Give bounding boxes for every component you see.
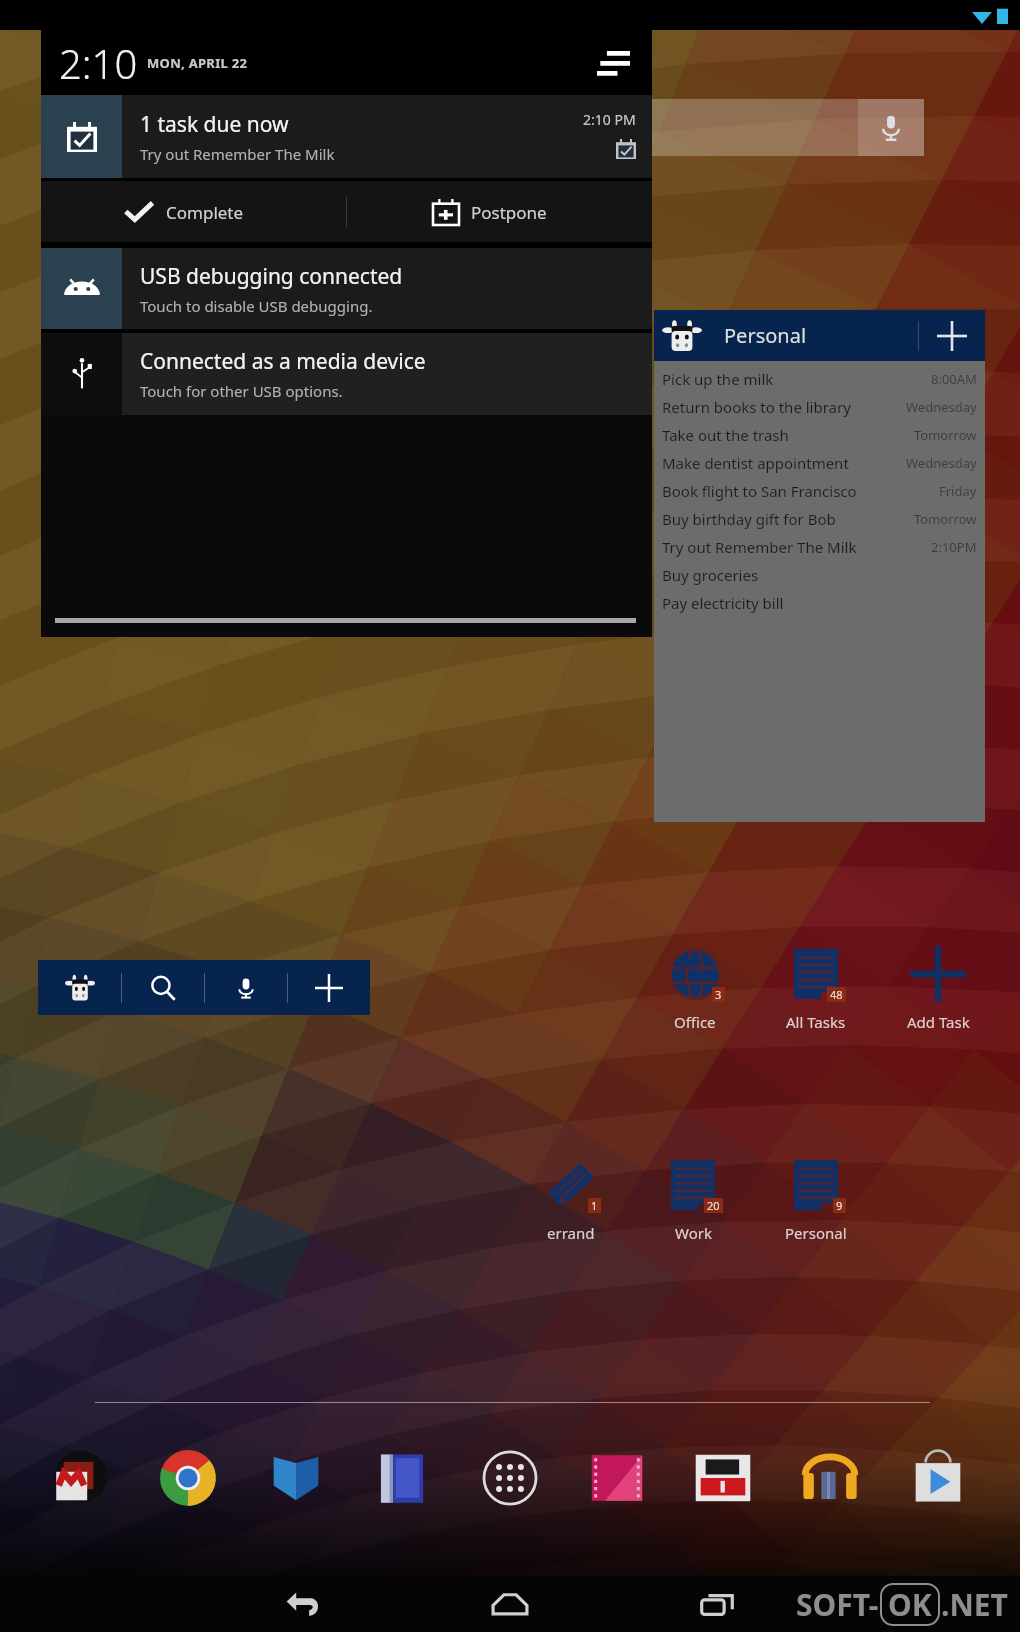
button[interactable]: Try out Remember The Milk [662,533,977,561]
staticText: 1 task due now [140,110,289,139]
button[interactable]: Book flight to San Francisco [662,477,977,505]
button[interactable]: Recents [673,1576,763,1632]
staticText: Add Task [907,1012,970,1032]
staticText: Try out Remember The Milk [140,144,335,164]
staticText: 2:10PM [931,538,977,556]
staticText: Tomorrow [914,510,977,528]
staticText: All Tasks [786,1012,846,1032]
staticText: 1 [591,1198,598,1213]
button[interactable]: Take out the trash [662,421,977,449]
staticText: Try out Remember The Milk [662,537,857,557]
staticText: Touch to disable USB debugging. [140,296,373,316]
staticText: Wednesday [906,454,977,472]
staticText: 20 [707,1198,720,1213]
staticText: 9 [836,1198,843,1213]
button[interactable]: Apps [468,1436,552,1520]
button[interactable]: Remember The Milk [38,960,121,1015]
staticText: Buy birthday gift for Bob [662,509,836,529]
button[interactable]: Home [465,1576,555,1632]
button[interactable]: 1 [511,1149,631,1249]
button[interactable]: Search [122,960,204,1015]
staticText: Make dentist appointment [662,453,849,473]
button[interactable]: Play Magazines [360,1436,444,1520]
staticText: MON, APRIL 22 [147,54,248,72]
button[interactable]: Add task [288,960,370,1015]
button[interactable]: Play Movies [575,1436,659,1520]
button[interactable]: Add task [919,310,985,361]
staticText: .NET [941,1584,1008,1625]
staticText: 3 [715,987,722,1002]
button[interactable]: 48 [756,938,876,1038]
button[interactable]: Play Store [896,1436,980,1520]
button[interactable]: Return books to the library [662,393,977,421]
staticText: Pay electricity bill [662,593,784,613]
staticText: Buy groceries [662,565,759,585]
button[interactable]: Buy groceries [662,561,977,589]
staticText: Touch for other USB options. [140,381,343,401]
staticText: Friday [939,482,977,500]
button[interactable]: Personal [654,310,985,361]
button[interactable]: 9 [756,1149,876,1249]
button[interactable]: Make dentist appointment [662,449,977,477]
staticText: Take out the trash [662,425,789,445]
button[interactable]: Back [258,1576,348,1632]
button[interactable]: Add Task [878,938,998,1038]
button[interactable]: Quick settings [590,43,636,83]
button[interactable]: 3 [635,938,755,1038]
staticText: 48 [830,987,843,1002]
staticText: Personal [724,322,807,349]
staticText: errand [547,1223,595,1243]
button[interactable]: Pay electricity bill [662,589,977,617]
button[interactable]: USB debugging connected [41,248,652,329]
staticText: Wednesday [906,398,977,416]
button[interactable]: Pick up the milk [662,365,977,393]
staticText: SOFT- [796,1584,879,1625]
button[interactable]: 1 task due now [41,95,652,178]
button[interactable]: Voice search [205,960,287,1015]
button[interactable]: 20 [633,1149,753,1249]
staticText: Work [675,1223,712,1243]
button[interactable]: Buy birthday gift for Bob [662,505,977,533]
staticText: USB debugging connected [140,262,403,291]
staticText: Personal [785,1223,847,1243]
staticText: Connected as a media device [140,347,426,376]
staticText: 2:10 PM [583,110,636,129]
button[interactable]: Chrome [146,1436,230,1520]
staticText: Complete [166,201,244,224]
button[interactable]: Connected as a media device [41,333,652,415]
staticText: 8:00AM [931,370,977,388]
staticText: Tomorrow [914,426,977,444]
staticText: Postpone [471,201,547,224]
button[interactable]: Google search [300,99,924,156]
button[interactable]: YouTube [681,1436,765,1520]
staticText: Book flight to San Francisco [662,481,857,501]
button[interactable]: Complete [41,181,346,242]
button[interactable]: Gmail [39,1436,123,1520]
staticText: OK [888,1584,932,1625]
staticText: Return books to the library [662,397,851,417]
staticText: Pick up the milk [662,369,774,389]
button[interactable]: Play Books [254,1436,338,1520]
staticText: Office [674,1012,716,1032]
button[interactable]: Play Music [788,1436,872,1520]
button[interactable]: Postpone [347,181,652,242]
staticText: 2:10 [59,36,138,90]
